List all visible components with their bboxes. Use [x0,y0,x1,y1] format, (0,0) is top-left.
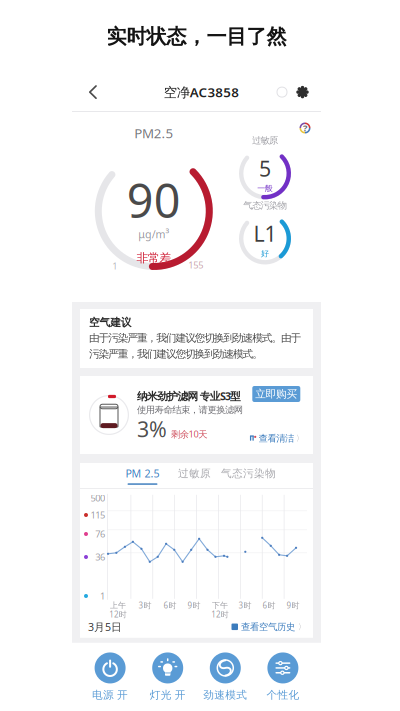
staticText: 电源 开 [92,688,128,701]
staticText: ? [303,122,307,134]
button[interactable]: 设备状态 [271,73,293,111]
staticText: 12时 [109,609,127,620]
staticText: 9时 [188,600,200,611]
staticText: 3时 [239,600,251,611]
staticText: 〉 [298,622,306,632]
staticText: 气态污染物 [221,467,276,480]
staticText: 立即购买 [255,387,297,400]
button[interactable]: 气态污染物 [220,469,276,482]
staticText: 灯光 开 [150,688,186,701]
staticText: 纳米劲护滤网 专业S3型 [137,389,241,403]
staticText: 劲速模式 [203,688,247,701]
staticText: 由于污染严重，我们建议您切换到劲速模式。由于 [89,331,302,344]
staticText: 1 [112,260,117,272]
staticText: L1 [253,219,276,248]
staticText: PM2.5 [134,124,173,142]
staticText: 一般 [257,183,273,193]
button[interactable]: 查看空气历史 [231,621,306,633]
staticText: 6时 [263,600,275,611]
staticText: 气态污染物 [243,200,287,211]
button[interactable]: 立即购买 [252,386,300,402]
staticText: 500 [91,492,105,504]
button[interactable]: 个性化 [255,652,310,701]
staticText: 5 [259,154,271,182]
button[interactable]: 劲速模式 [198,652,253,701]
staticText: 1 [100,590,105,602]
staticText: 9时 [287,600,299,611]
staticText: 好 [261,249,269,258]
button[interactable]: 空净AC3858 [151,73,251,111]
staticText: 实时状态，一目了然 [106,24,286,49]
staticText: 36 [95,551,105,563]
button[interactable]: 过敏原 [174,469,214,482]
staticText: 〉 [296,433,304,443]
staticText: 3% [137,415,167,443]
staticText: 非常差 [136,251,171,265]
staticText: 6时 [164,600,176,611]
button[interactable]: 电源 开 [83,652,138,701]
button[interactable]: 查看清洁 [249,432,304,444]
button[interactable]: 灯光 开 [140,652,195,701]
staticText: 12时 [211,609,229,620]
staticText: 使用寿命结束，请更换滤网 [137,404,243,416]
button[interactable]: 帮助 [298,121,311,134]
staticText: 查看空气历史 [241,621,295,633]
staticText: μg/m³ [138,227,169,241]
staticText: 115 [91,509,105,521]
staticText: 下午 [212,600,228,610]
button[interactable]: 设置 [291,73,313,111]
staticText: 3时 [139,600,151,611]
staticText: 76 [95,528,105,540]
staticText: 剩余10天 [171,428,207,440]
staticText: 空净AC3858 [164,83,239,101]
staticText: 空气建议 [89,316,132,329]
button[interactable]: 返回 [79,73,107,111]
staticText: 过敏原 [252,135,278,146]
button[interactable]: PM 2.5 [116,466,168,485]
staticText: 污染严重，我们建议您切换到劲速模式。 [89,347,263,360]
staticText: 上午 [110,600,126,610]
staticText: 查看清洁 [259,432,294,444]
staticText: 3月5日 [88,620,122,634]
staticText: PM 2.5 [125,466,159,480]
staticText: 过敏原 [178,467,211,480]
staticText: 155 [188,259,203,271]
staticText: 90 [127,169,181,231]
staticText: 个性化 [266,688,299,701]
